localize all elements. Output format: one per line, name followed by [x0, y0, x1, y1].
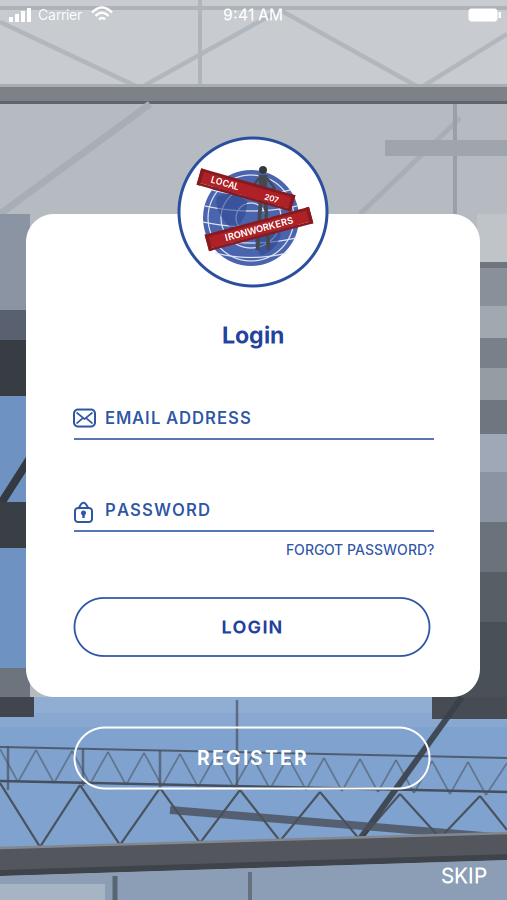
staticText: Carrier — [38, 6, 82, 23]
button[interactable]: E M A I L A D D R E S S — [26, 214, 480, 454]
staticText: FORGOT PASSWORD? — [286, 541, 434, 558]
staticText: SKIP — [441, 863, 487, 888]
staticText: L O G I N — [221, 616, 282, 638]
button[interactable]: R E G I S T E R — [74, 727, 429, 788]
button[interactable]: FORGOT PASSWORD? — [74, 538, 434, 562]
staticText: E M A I L A D D R E S S — [105, 408, 251, 428]
staticText: 207 — [265, 186, 280, 196]
staticText: IRONWORKERS — [224, 223, 294, 235]
button[interactable]: SKIP — [435, 860, 493, 891]
staticText: P A S S W O R D — [105, 500, 210, 520]
button[interactable]: P A S S W O R D — [26, 214, 480, 454]
staticText: R E G I S T E R — [197, 746, 307, 770]
button[interactable]: L O G I N — [74, 598, 429, 656]
staticText: 9:41 AM — [223, 6, 283, 24]
staticText: LOCAL — [209, 184, 238, 195]
staticText: Login — [222, 321, 284, 349]
